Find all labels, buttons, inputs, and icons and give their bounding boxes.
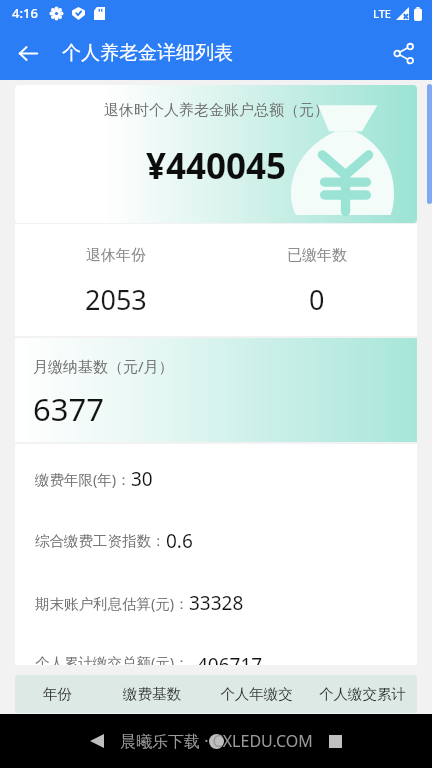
- staticText: 期末账户利息估算(元)：: [35, 593, 189, 613]
- button[interactable]: Recents: [313, 719, 357, 763]
- button[interactable]: Back: [75, 719, 119, 763]
- staticText: LTE: [373, 6, 391, 21]
- button[interactable]: Back: [4, 29, 52, 77]
- staticText: 退休年份: [86, 246, 146, 265]
- staticText: 退休时个人养老金账户总额（元）: [104, 101, 329, 120]
- staticText: 2053: [85, 281, 147, 318]
- staticText: 30: [131, 466, 153, 492]
- button[interactable]: 年份: [15, 675, 100, 713]
- button[interactable]: 个人缴交累计: [308, 675, 417, 713]
- staticText: 缴费基数: [123, 685, 181, 703]
- button[interactable]: Home: [194, 719, 238, 763]
- staticText: 个人缴交累计: [319, 685, 406, 703]
- staticText: 个人养老金详细列表: [62, 41, 233, 65]
- staticText: 缴费年限(年)：: [35, 469, 131, 489]
- staticText: 个人年缴交: [220, 685, 293, 703]
- button[interactable]: 缴费基数: [100, 675, 204, 713]
- button[interactable]: 已缴年数: [216, 224, 417, 336]
- staticText: 综合缴费工资指数：: [35, 532, 166, 550]
- staticText: 33328: [189, 590, 244, 616]
- staticText: 406717: [197, 652, 263, 665]
- staticText: 0: [309, 281, 325, 318]
- staticText: 个人累计缴交总额(元)：: [35, 652, 189, 665]
- staticText: 6377: [33, 388, 104, 430]
- staticText: 年份: [43, 685, 72, 703]
- staticText: 4:16: [12, 4, 38, 22]
- button[interactable]: 个人年缴交: [204, 675, 308, 713]
- staticText: 晨曦乐下载 · CXLEDU.COM: [120, 730, 313, 752]
- button[interactable]: Share: [380, 30, 426, 76]
- button[interactable]: 退休年份: [15, 224, 216, 336]
- staticText: 0.6: [166, 528, 193, 554]
- staticText: 月缴纳基数（元/月）: [33, 356, 174, 376]
- staticText: 已缴年数: [287, 246, 347, 265]
- staticText: ¥440045: [146, 142, 287, 190]
